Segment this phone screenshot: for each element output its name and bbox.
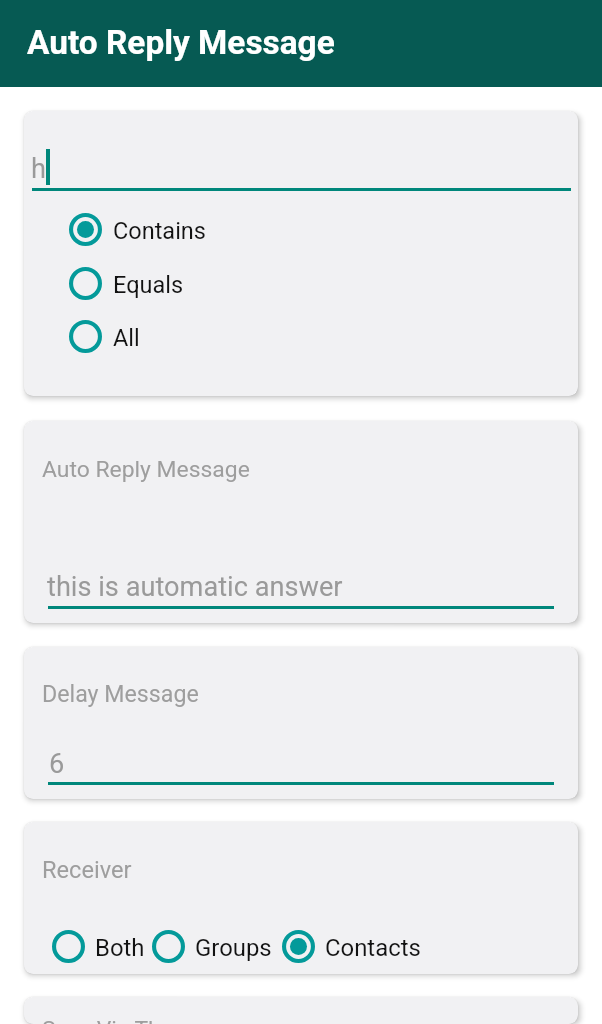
- button[interactable]: Contacts: [282, 926, 421, 966]
- staticText: Auto Reply Message: [42, 456, 250, 483]
- staticText: Delay Message: [42, 680, 199, 707]
- staticText: Groups: [195, 934, 272, 962]
- button[interactable]: All: [24, 313, 578, 359]
- button[interactable]: Equals: [24, 260, 578, 306]
- staticText: Save Via Theme: [42, 1016, 206, 1024]
- staticText: All: [113, 324, 140, 352]
- button[interactable]: Delay message text field: [48, 728, 554, 785]
- staticText: Both: [95, 934, 145, 962]
- staticText: 6: [49, 748, 65, 780]
- button[interactable]: Contains: [24, 206, 578, 252]
- button[interactable]: Both: [52, 926, 145, 966]
- staticText: Equals: [113, 271, 184, 299]
- button[interactable]: Groups: [152, 926, 272, 966]
- staticText: this is automatic answer: [47, 571, 343, 603]
- staticText: Auto Reply Message: [27, 23, 335, 62]
- staticText: Contains: [113, 217, 206, 245]
- staticText: Receiver: [42, 856, 132, 884]
- button[interactable]: Auto reply message text field: [48, 551, 554, 609]
- staticText: Contacts: [325, 934, 421, 962]
- button[interactable]: Keyword text field: [32, 133, 571, 191]
- staticText: h: [31, 153, 46, 185]
